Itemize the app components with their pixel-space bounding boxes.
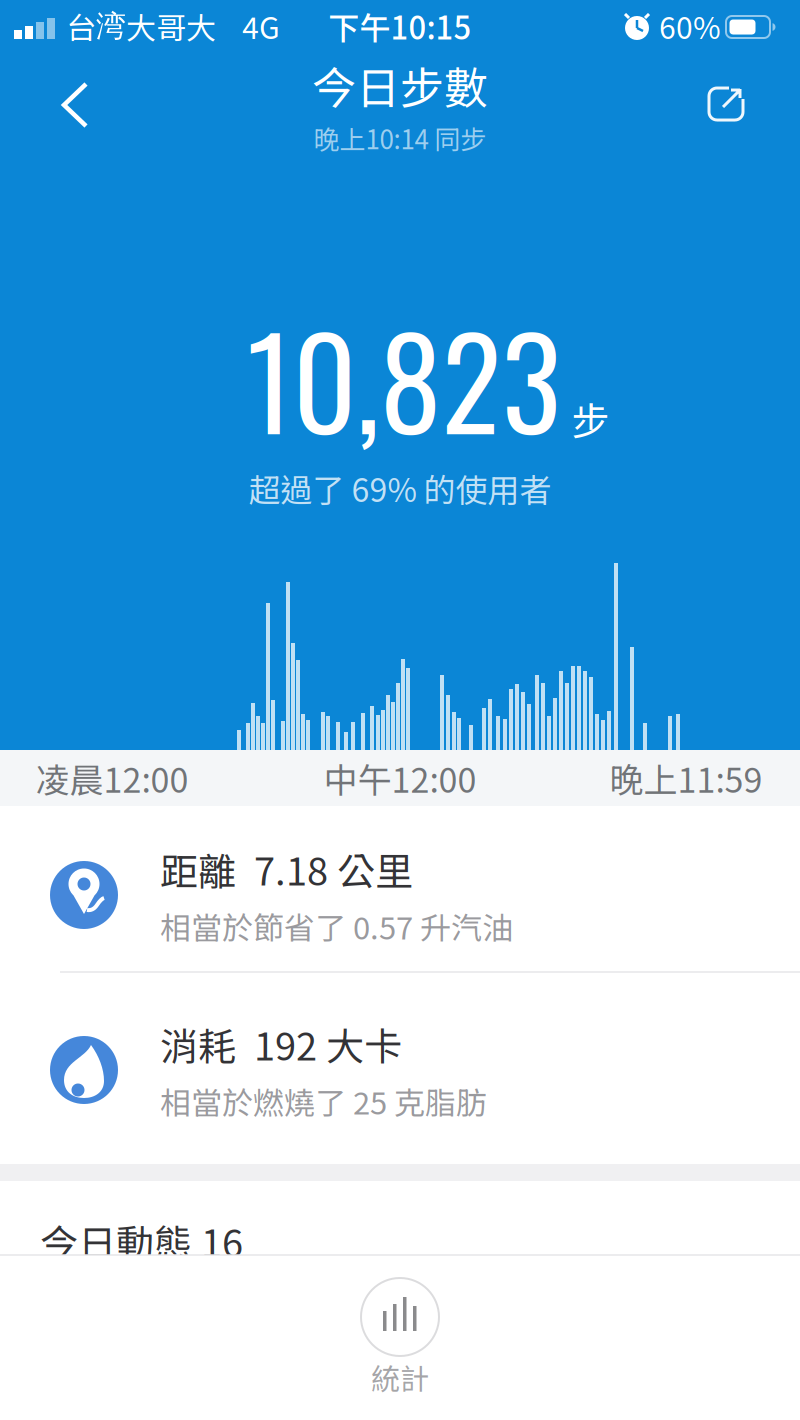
staticText: 步 bbox=[571, 391, 609, 446]
staticText: 晚上11:59 bbox=[609, 753, 762, 803]
staticText: 今日動態 16 bbox=[40, 1213, 243, 1268]
staticText: 統計 bbox=[371, 1356, 429, 1398]
staticText: 相當於節省了 0.57 升汽油 bbox=[160, 904, 513, 948]
staticText: 距離 7.18 公里 bbox=[160, 841, 413, 896]
staticText: 消耗 192 大卡 bbox=[160, 1016, 402, 1071]
staticText: 中午12:00 bbox=[323, 753, 476, 803]
staticText: 相當於燃燒了 25 克脂肪 bbox=[160, 1079, 487, 1123]
staticText: 今日步數 bbox=[312, 53, 488, 117]
staticText: 晚上10:14 同步 bbox=[313, 119, 486, 157]
staticText: 4G bbox=[242, 4, 280, 48]
staticText: 台湾大哥大 bbox=[66, 4, 216, 48]
staticText: 10,823 bbox=[246, 286, 561, 470]
staticText: 60% bbox=[659, 4, 721, 48]
staticText: 凌晨12:00 bbox=[35, 753, 188, 803]
staticText: 下午10:15 bbox=[328, 4, 471, 48]
staticText: 超過了 69% 的使用者 bbox=[248, 465, 551, 511]
